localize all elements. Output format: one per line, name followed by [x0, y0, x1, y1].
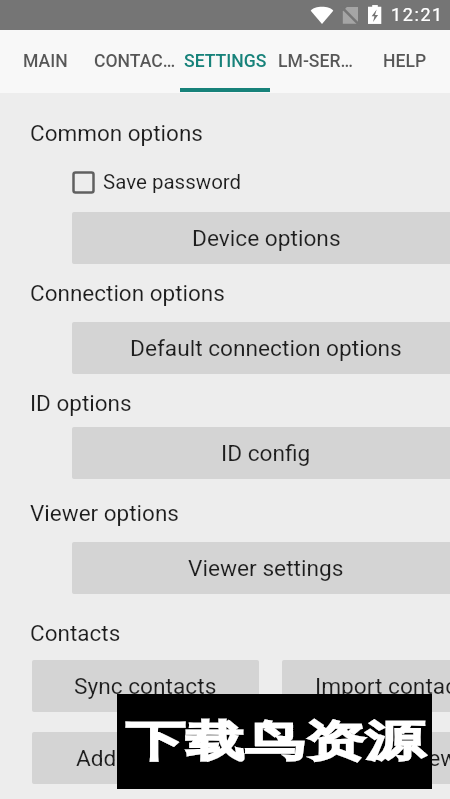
button[interactable]: Default connection options [72, 322, 450, 374]
staticText: Contacts viewer [315, 745, 450, 772]
button[interactable]: Contacts viewer [282, 732, 450, 784]
staticText: Connection options [30, 280, 225, 306]
staticText: CONTAC… [94, 51, 176, 72]
staticText: Viewer settings [188, 555, 344, 582]
staticText: HELP [383, 51, 427, 72]
button[interactable]: LM-SER… [270, 30, 360, 92]
button[interactable]: Viewer settings [72, 542, 450, 594]
staticText: MAIN [23, 51, 68, 72]
staticText: Address book [76, 745, 216, 772]
button[interactable]: SETTINGS [180, 30, 270, 92]
staticText: Save password [103, 170, 242, 194]
staticText: Sync contacts [74, 673, 217, 700]
staticText: ID config [221, 440, 311, 467]
button[interactable]: Import contacts [282, 660, 450, 712]
button[interactable]: Address book [32, 732, 259, 784]
other: Watermark [117, 694, 432, 789]
button[interactable]: ID config [72, 427, 450, 479]
staticText: ID options [30, 390, 132, 416]
button[interactable]: MAIN [0, 30, 90, 92]
staticText: 12:21 [391, 4, 444, 25]
button[interactable]: Device options [72, 212, 450, 264]
button[interactable]: Save password [72, 170, 242, 194]
staticText: Default connection options [130, 335, 402, 362]
staticText: 下载鸟资源 [125, 715, 424, 769]
staticText: Contacts [30, 620, 121, 646]
button[interactable]: CONTAC… [90, 30, 180, 92]
staticText: Device options [192, 225, 341, 252]
button[interactable]: Sync contacts [32, 660, 259, 712]
staticText: Viewer options [30, 500, 179, 526]
staticText: Import contacts [315, 673, 450, 700]
staticText: Common options [30, 120, 203, 146]
button[interactable]: HELP [360, 30, 450, 92]
staticText: LM-SER… [278, 51, 353, 72]
staticText: SETTINGS [184, 51, 267, 72]
